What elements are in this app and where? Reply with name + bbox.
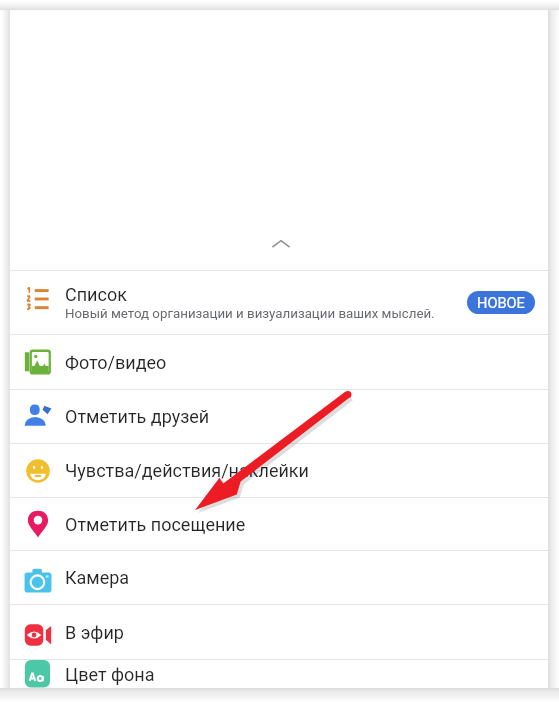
button[interactable]: НОВОЕ [467,291,535,314]
button[interactable]: Отметить друзей [10,390,548,443]
button[interactable]: Отметить посещение [10,498,548,550]
staticText: Фото/видео [65,352,167,373]
staticText: Новый метод организации и визуализации в… [65,306,435,322]
staticText: Цвет фона [65,664,155,685]
staticText: Чувства/действия/наклейки [65,460,309,481]
button[interactable]: Цвет фона [10,660,548,688]
button[interactable]: Фото/видео [10,335,548,389]
staticText: Камера [65,567,130,588]
button[interactable]: Чувства/действия/наклейки [10,444,548,497]
staticText: Отметить друзей [65,406,210,427]
staticText: Список [65,284,127,305]
staticText: В эфир [65,622,124,643]
staticText: НОВОЕ [477,294,525,311]
button[interactable]: В эфир [10,605,548,659]
button[interactable]: Камера [10,551,548,604]
staticText: Отметить посещение [65,514,246,535]
button[interactable]: Collapse sheet [264,234,298,254]
button[interactable]: Список [10,271,548,334]
